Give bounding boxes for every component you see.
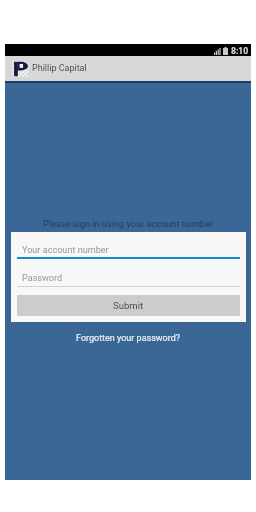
staticText: Phillip Capital xyxy=(32,63,87,74)
button[interactable]: Phillip Capital logo xyxy=(5,56,251,81)
staticText: Forgotten your password? xyxy=(76,333,181,344)
staticText: Password xyxy=(22,273,63,284)
button[interactable]: Submit xyxy=(17,295,240,316)
staticText: Submit xyxy=(113,300,144,311)
other: Mobile signal xyxy=(214,47,221,55)
button[interactable]: Password xyxy=(17,273,240,288)
button[interactable]: Forgotten your password? xyxy=(5,332,251,344)
staticText: 8:10 xyxy=(231,46,249,56)
staticText: Your account number xyxy=(22,245,109,256)
staticText: Please sign in using your account number xyxy=(5,218,251,229)
other: Phillip Capital logo xyxy=(12,61,28,77)
other: Battery xyxy=(223,47,228,55)
button[interactable]: Your account number xyxy=(17,245,240,260)
